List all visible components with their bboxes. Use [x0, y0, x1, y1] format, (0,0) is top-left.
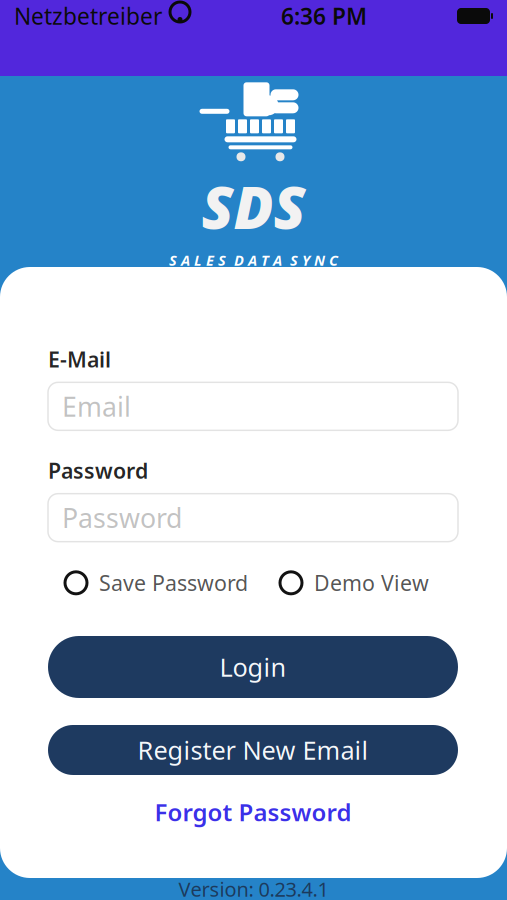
button[interactable]: Demo View: [280, 569, 429, 597]
button[interactable]: Register New Email: [48, 725, 458, 775]
staticText: E-Mail: [48, 345, 111, 373]
button[interactable]: Save Password: [65, 569, 248, 597]
staticText: Forgot Password: [154, 796, 351, 828]
staticText: Login: [219, 650, 286, 684]
staticText: Version: 0.23.4.1: [178, 876, 328, 900]
staticText: Password: [62, 500, 182, 535]
staticText: Demo View: [314, 569, 429, 597]
button[interactable]: Forgot Password: [48, 795, 458, 829]
staticText: SDS: [201, 167, 305, 245]
staticText: Email: [62, 389, 131, 424]
staticText: Netzbetreiber: [14, 1, 162, 31]
staticText: Password: [48, 456, 148, 485]
staticText: Register New Email: [137, 733, 368, 767]
staticText: S A L E S D A T A S Y N C: [169, 250, 338, 270]
staticText: Save Password: [99, 569, 248, 597]
staticText: 6:36 PM: [281, 1, 367, 31]
button[interactable]: Login: [48, 636, 458, 698]
